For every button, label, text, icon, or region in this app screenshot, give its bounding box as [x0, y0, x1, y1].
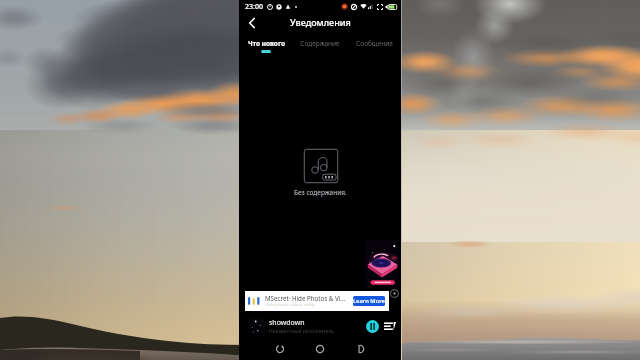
button[interactable]: Home [311, 340, 329, 358]
staticText: Уведомления [290, 16, 351, 28]
staticText: 23:00 [245, 2, 263, 12]
button[interactable]: Что нового [239, 32, 293, 53]
button[interactable]: Learn More [353, 296, 385, 306]
staticText: Без содержания. [294, 188, 347, 197]
button[interactable]: Pause [366, 320, 379, 333]
button[interactable]: Ad info [390, 289, 399, 298]
staticText: Learn More [353, 297, 385, 305]
button[interactable]: Recents [351, 340, 369, 358]
staticText: MSecret· Hide Photos & Vi... [265, 294, 346, 302]
button[interactable]: Back [245, 16, 259, 30]
button[interactable]: Сообщение [347, 32, 401, 48]
button[interactable]: showdown [239, 314, 401, 338]
staticText: Неизвестный исполнитель [269, 328, 335, 335]
button[interactable]: Back [271, 340, 289, 358]
staticText: Сообщение [356, 39, 393, 48]
staticText: showdown [269, 318, 305, 328]
staticText: Содержание [300, 39, 340, 48]
button[interactable]: MSecret· Hide Photos & Vi... [245, 291, 389, 311]
button[interactable]: Содержание [293, 32, 347, 48]
button[interactable]: Queue [384, 320, 396, 332]
staticText: Hide photos videos safely [265, 302, 316, 308]
button[interactable]: Advertisement [365, 240, 399, 287]
staticText: Что нового [248, 39, 285, 48]
